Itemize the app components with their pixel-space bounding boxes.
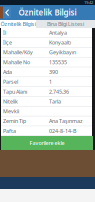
staticText: 19:42 (84, 0, 93, 5)
staticText: Nitelik (3, 98, 18, 105)
button[interactable]: Bina Bilgi Listesi (36, 20, 95, 28)
staticText: Antalya (49, 29, 67, 36)
staticText: İlçe (3, 39, 12, 46)
staticText: Öznitelik Bilgisi (18, 7, 76, 18)
button[interactable]: Back (3, 7, 11, 18)
staticText: İl (3, 29, 6, 36)
staticText: 1 (49, 78, 52, 85)
staticText: 2.745,36 (49, 88, 69, 95)
staticText: Mahalle/Köy (3, 49, 33, 56)
staticText: Mahalle No (3, 59, 30, 66)
staticText: Parsel (3, 78, 18, 85)
staticText: Tapu Alanı (3, 88, 27, 95)
staticText: 135535 (49, 59, 67, 66)
staticText: Favorilere ekle (29, 139, 64, 147)
staticText: Mevkii (3, 108, 19, 115)
staticText: 390 (49, 68, 58, 75)
staticText: Konyaaltı (49, 39, 71, 46)
button[interactable]: Favorilere ekle (1, 136, 93, 150)
staticText: Ada (3, 68, 12, 75)
staticText: 024-8-14-B (49, 127, 76, 134)
staticText: Pafta (3, 127, 16, 134)
staticText: Geyikbayırı (49, 49, 76, 56)
staticText: Tarla (49, 98, 61, 105)
button[interactable]: Öznitelik Bilgisi (0, 20, 36, 28)
staticText: Zemin Tip (3, 117, 26, 125)
staticText: Ana Taşınmaz (49, 117, 83, 125)
staticText: Bina Bilgi Listesi (47, 20, 84, 28)
staticText: Öznitelik Bilgisi (0, 20, 35, 28)
